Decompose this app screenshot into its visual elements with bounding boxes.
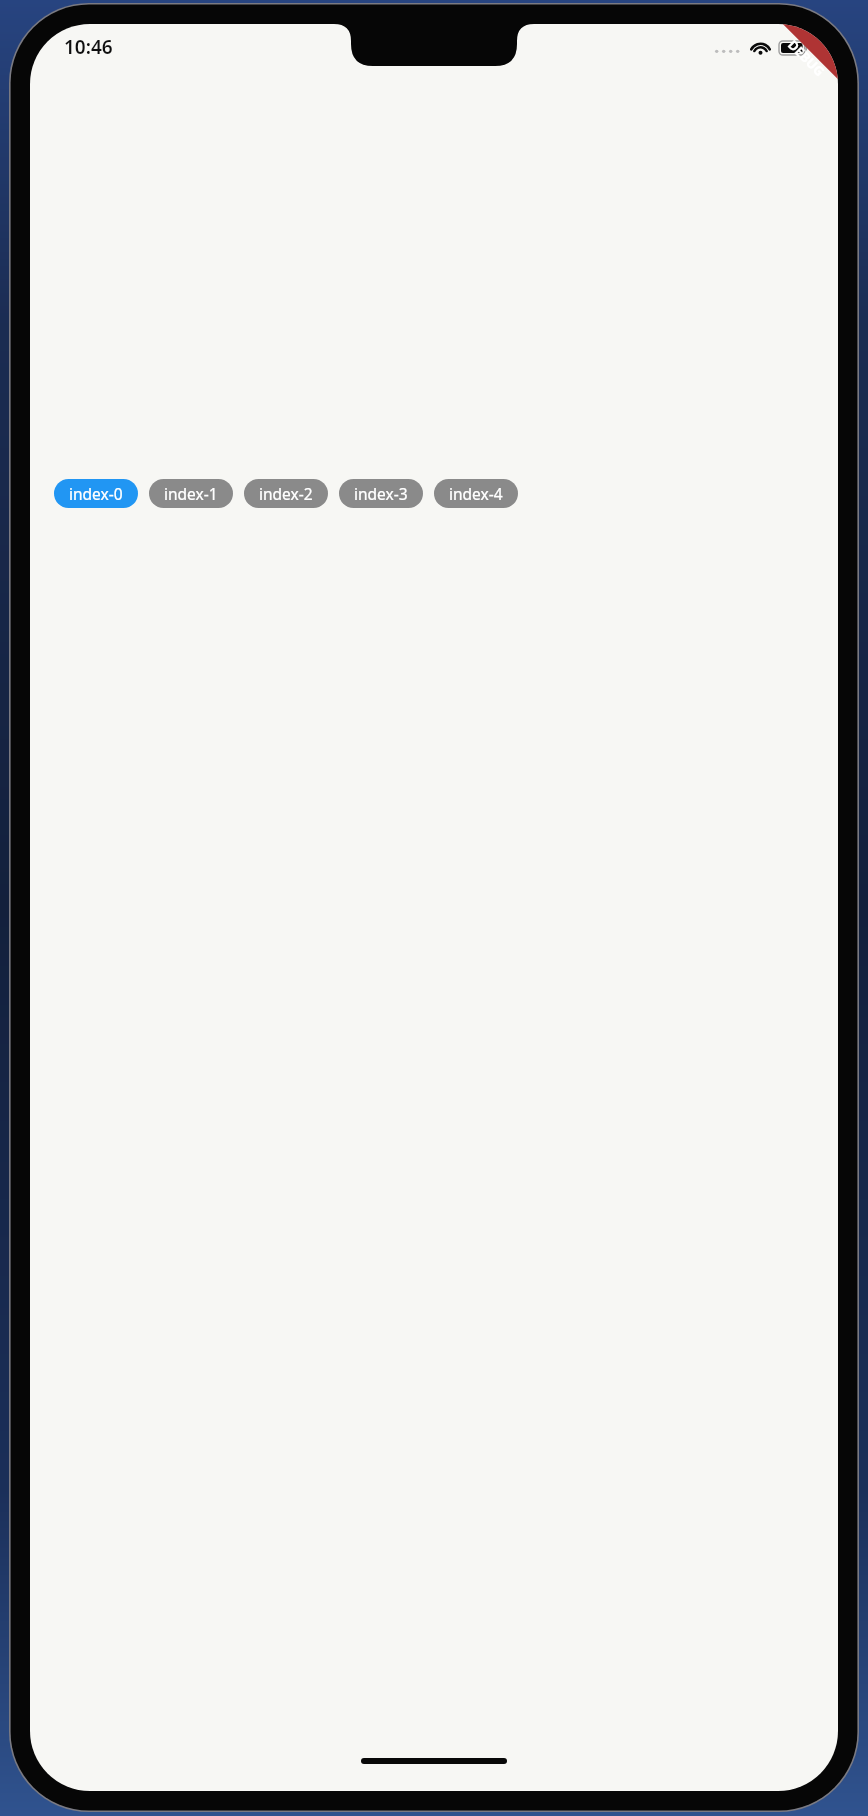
button[interactable]: index-0 — [54, 479, 138, 508]
other: Cellular signal — [715, 42, 741, 54]
other: Battery — [779, 41, 807, 55]
staticText: DEBUG — [784, 36, 829, 80]
staticText: index-2 — [259, 483, 313, 504]
staticText: index-4 — [449, 483, 503, 504]
button[interactable]: index-1 — [149, 479, 233, 508]
staticText: index-1 — [164, 483, 218, 504]
staticText: index-0 — [69, 483, 123, 504]
staticText: index-3 — [354, 483, 408, 504]
staticText: 10:46 — [64, 34, 113, 60]
button[interactable]: index-4 — [434, 479, 518, 508]
other: Wi-Fi — [750, 40, 771, 55]
button[interactable]: index-3 — [339, 479, 423, 508]
button[interactable]: index-2 — [244, 479, 328, 508]
